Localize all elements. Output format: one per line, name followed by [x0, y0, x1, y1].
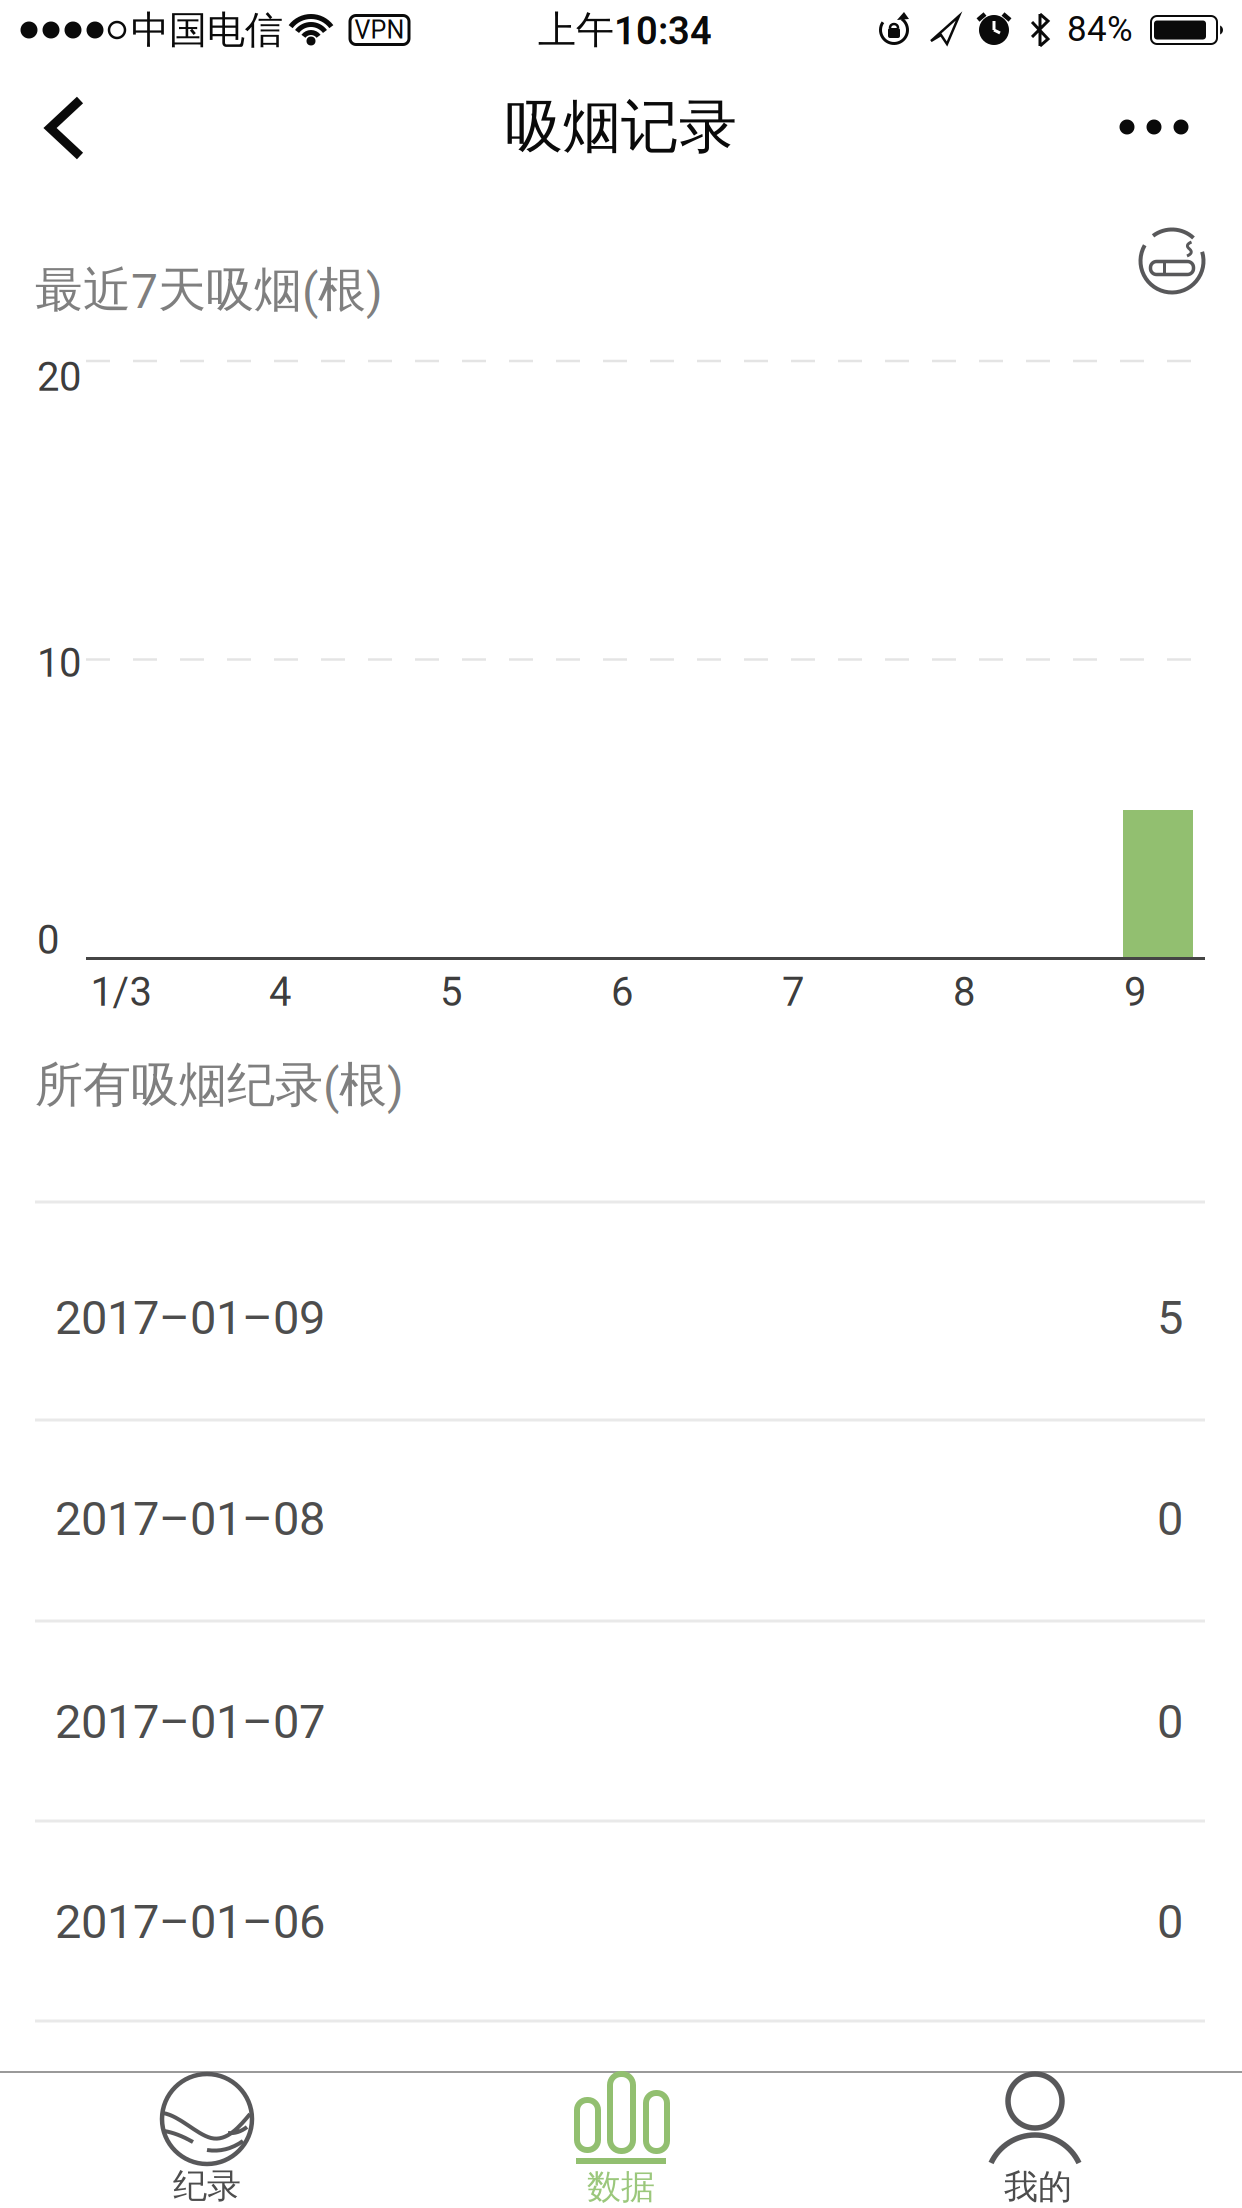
button[interactable]: 更多: [1094, 87, 1214, 167]
staticText: 9: [1124, 969, 1146, 1015]
staticText: 4: [269, 969, 291, 1015]
button[interactable]: 数据: [414, 2073, 828, 2208]
staticText: 所有吸烟纪录(根): [35, 1055, 404, 1115]
staticText: 84%: [1067, 8, 1133, 49]
staticText: 10: [37, 640, 81, 686]
button[interactable]: 吸烟: [1136, 227, 1208, 295]
staticText: 6: [611, 969, 633, 1015]
staticText: 纪录: [173, 2165, 241, 2207]
staticText: 7: [782, 969, 804, 1015]
staticText: VPN: [354, 15, 404, 45]
staticText: 我的: [1004, 2166, 1072, 2208]
button[interactable]: 我的: [828, 2073, 1242, 2208]
staticText: 20: [37, 354, 81, 400]
staticText: 2017–01–07: [55, 1694, 325, 1750]
staticText: 0: [1157, 1491, 1183, 1547]
button[interactable]: 纪录: [0, 2073, 414, 2208]
staticText: 1/3: [90, 969, 151, 1015]
staticText: 数据: [587, 2166, 655, 2208]
staticText: 0: [1157, 1694, 1183, 1750]
staticText: 2017–01–06: [55, 1894, 325, 1950]
staticText: 中国电信: [131, 6, 283, 54]
staticText: 0: [1157, 1894, 1183, 1950]
staticText: 上午10:34: [538, 6, 712, 54]
staticText: 2017–01–08: [55, 1491, 325, 1547]
staticText: 5: [1157, 1290, 1183, 1346]
staticText: 8: [953, 969, 975, 1015]
staticText: 最近7天吸烟(根): [35, 260, 383, 320]
button[interactable]: 返回: [25, 88, 105, 168]
staticText: 0: [37, 917, 59, 963]
staticText: 2017–01–09: [55, 1290, 325, 1346]
staticText: 5: [440, 969, 462, 1015]
staticText: 吸烟记录: [505, 90, 737, 164]
